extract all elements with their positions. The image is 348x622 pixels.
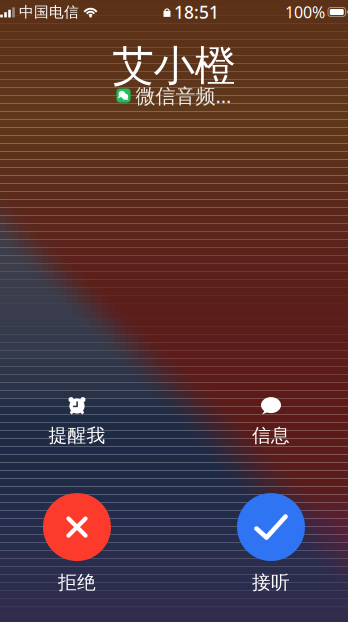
staticText: 拒绝 [58,571,96,594]
button[interactable]: 拒绝 [22,493,132,594]
staticText: 提醒我 [48,424,105,447]
staticText: 接听 [252,571,290,594]
button[interactable]: 接听 [216,493,326,594]
button[interactable]: Message [216,393,326,449]
staticText: 微信音频… [135,82,231,109]
staticText: 中国电信 [19,3,79,21]
staticText: 18:51 [174,0,219,23]
button[interactable]: Remind Me [22,393,132,449]
staticText: 艾小橙 [112,41,235,91]
staticText: 信息 [252,424,290,447]
staticText: 100% [285,1,325,23]
